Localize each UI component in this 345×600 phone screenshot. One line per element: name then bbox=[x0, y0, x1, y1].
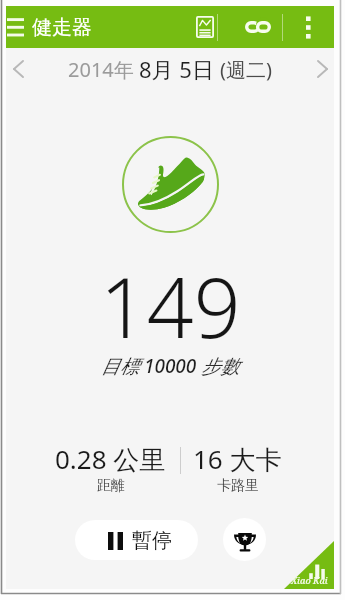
staticText: 0.28 公里 bbox=[55, 441, 166, 477]
button[interactable]: Link device bbox=[226, 6, 290, 48]
button[interactable]: Menu bbox=[6, 6, 30, 48]
staticText: 149 bbox=[100, 250, 241, 362]
staticText: (週二) bbox=[220, 56, 272, 83]
button[interactable]: Next day bbox=[310, 48, 334, 90]
staticText: 距離 bbox=[97, 477, 125, 495]
staticText: 卡路里 bbox=[217, 477, 259, 495]
staticText: Xiao Kai bbox=[291, 574, 328, 586]
button[interactable]: Previous day bbox=[6, 48, 30, 90]
button[interactable]: 16 大卡 bbox=[162, 441, 312, 495]
staticText: 2014年 bbox=[68, 56, 139, 83]
staticText: 16 大卡 bbox=[193, 441, 282, 477]
staticText: 健走器 bbox=[32, 15, 92, 40]
staticText: 8月 5日 bbox=[139, 54, 220, 84]
button[interactable]: 0.28 公里 bbox=[35, 441, 185, 495]
staticText: 暫停 bbox=[132, 528, 172, 553]
button[interactable]: 暫停 bbox=[75, 520, 198, 560]
button[interactable]: Achievements bbox=[223, 518, 266, 561]
staticText: 目標 10000 步數 bbox=[101, 353, 240, 379]
button[interactable]: More options bbox=[283, 6, 333, 48]
button[interactable]: Statistics bbox=[187, 6, 223, 48]
